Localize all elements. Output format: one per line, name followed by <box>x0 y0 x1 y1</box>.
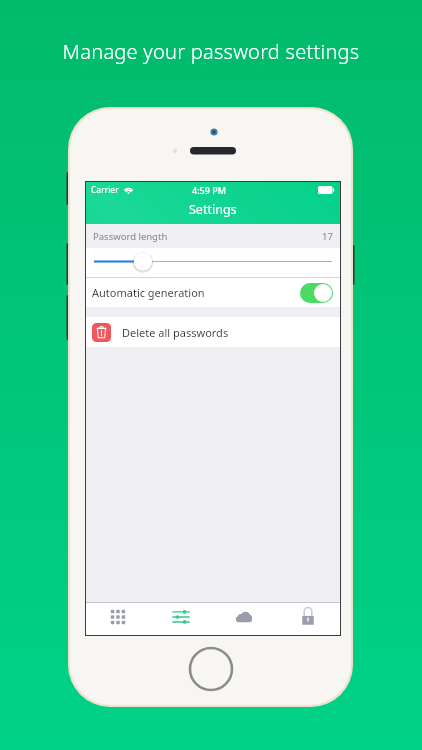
button[interactable]: Passwords <box>86 603 149 635</box>
button[interactable]: Lock <box>276 603 340 635</box>
staticText: Manage your password settings <box>0 38 422 65</box>
staticText: Delete all passwords <box>122 325 229 340</box>
button[interactable]: Cloud <box>212 603 276 635</box>
staticText: Settings <box>189 201 237 218</box>
staticText: 17 <box>322 230 333 243</box>
staticText: Automatic generation <box>92 285 205 300</box>
button[interactable]: Automatic generation <box>86 278 340 307</box>
button[interactable] <box>300 283 333 303</box>
button[interactable]: Settings <box>149 603 212 635</box>
staticText: Carrier <box>91 184 119 196</box>
staticText: Password length <box>93 230 168 243</box>
staticText: 4:59 PM <box>192 184 226 196</box>
button[interactable]: Delete all passwords <box>86 317 340 347</box>
